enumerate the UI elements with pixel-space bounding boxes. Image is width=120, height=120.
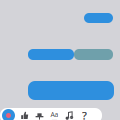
staticText: Aa: [50, 110, 58, 119]
button[interactable]: More: [77, 108, 92, 120]
button[interactable]: Music: [62, 108, 77, 120]
button[interactable]: Digital Touch: [17, 108, 32, 120]
button[interactable]: [74, 49, 113, 60]
button[interactable]: [28, 49, 74, 60]
button[interactable]: [28, 81, 114, 100]
staticText: ?: [82, 108, 87, 120]
button[interactable]: Stickers: [47, 108, 62, 120]
button[interactable]: App Store: [0, 108, 17, 120]
button[interactable]: [84, 13, 113, 23]
button[interactable]: Photos: [32, 108, 47, 120]
